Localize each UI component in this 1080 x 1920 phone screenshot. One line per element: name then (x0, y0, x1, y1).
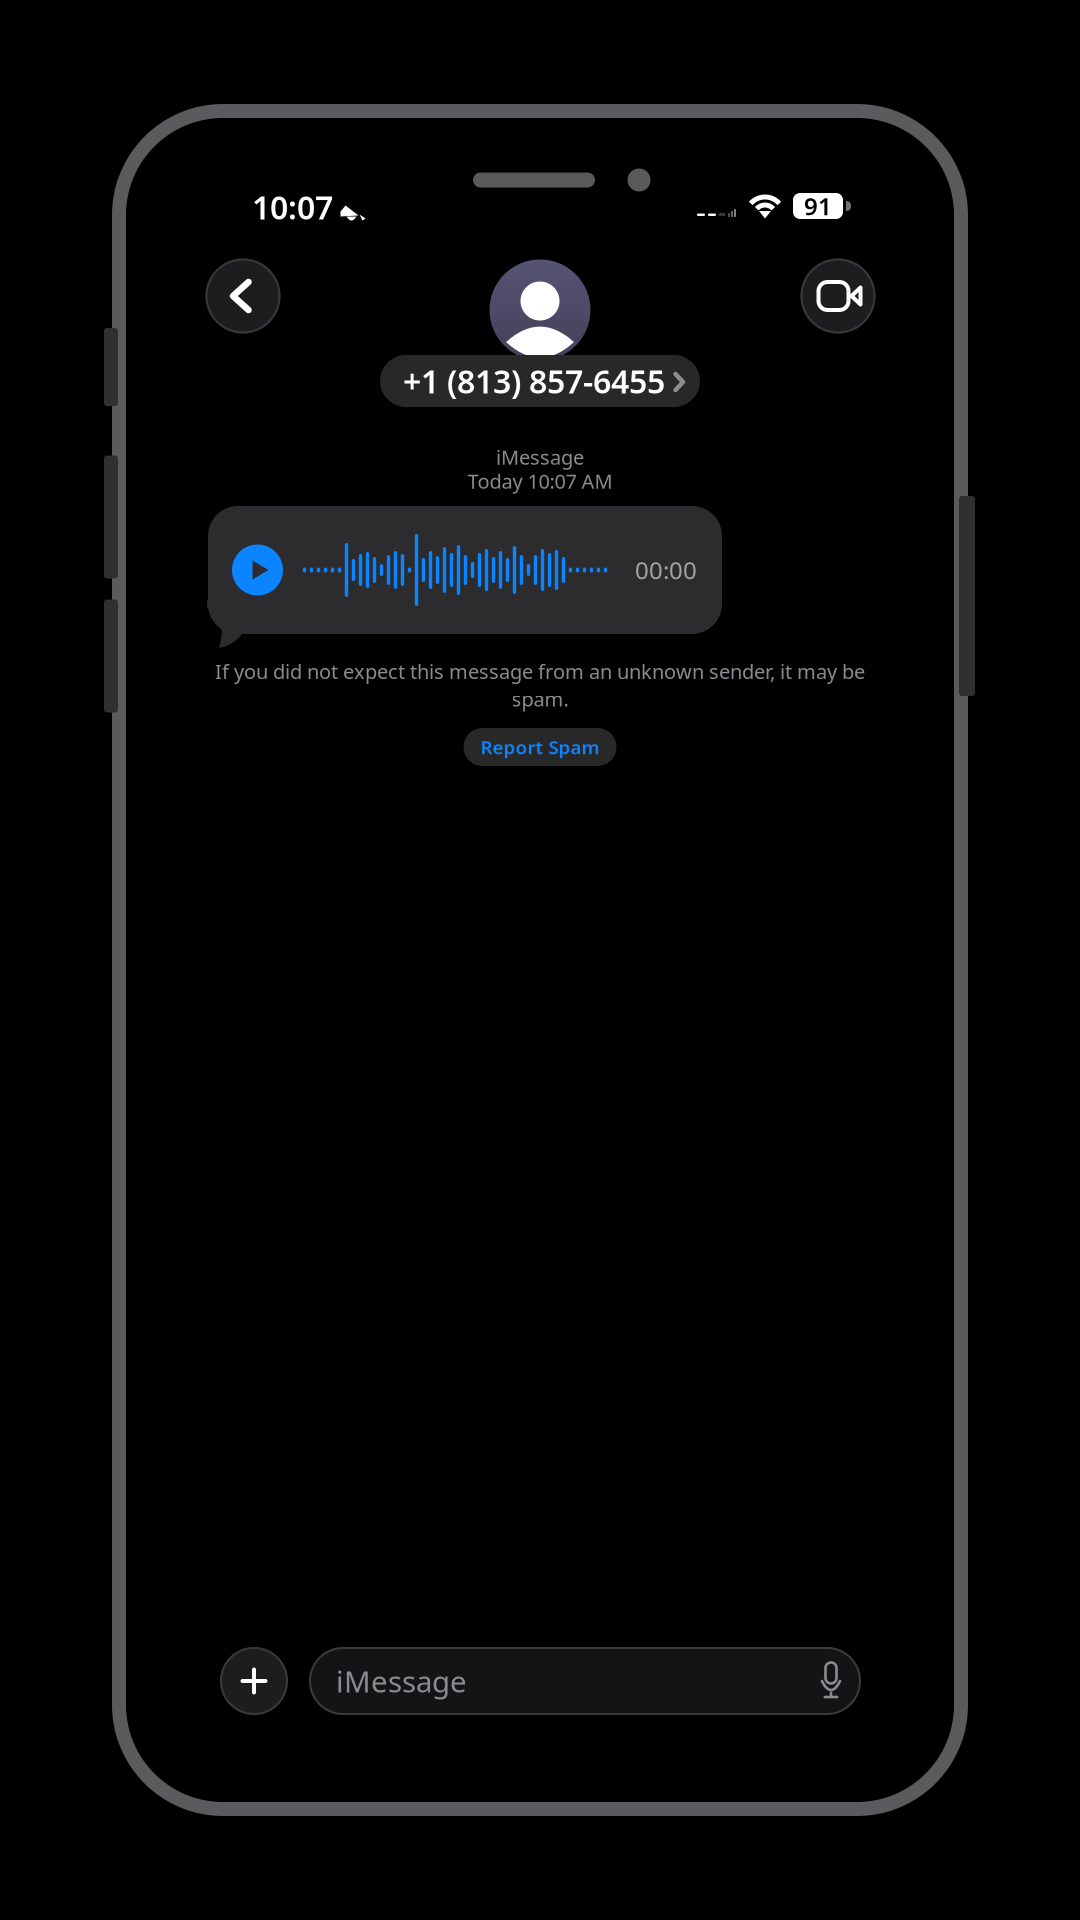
button[interactable]: Add attachment (220, 1647, 288, 1715)
staticText: Today 10:07 AM (467, 468, 612, 494)
button[interactable]: +1 (813) 857-6455 (380, 355, 700, 407)
staticText: 91 (804, 190, 832, 222)
staticText: If you did not expect this message from … (215, 658, 865, 684)
staticText: Report Spam (480, 735, 599, 759)
staticText: iMessage (496, 444, 584, 470)
staticText: 10:07 (252, 186, 333, 228)
button[interactable]: Back (205, 258, 280, 333)
button[interactable]: Play voice message (232, 544, 283, 595)
staticText: spam. (511, 685, 568, 712)
button[interactable]: FaceTime (800, 258, 875, 333)
staticText: +1 (813) 857-6455 (403, 360, 665, 402)
button[interactable]: Report Spam (463, 728, 616, 766)
staticText: 00:00 (635, 554, 697, 586)
button[interactable]: Contact photo (489, 259, 590, 360)
staticText: iMessage (336, 1661, 467, 1700)
